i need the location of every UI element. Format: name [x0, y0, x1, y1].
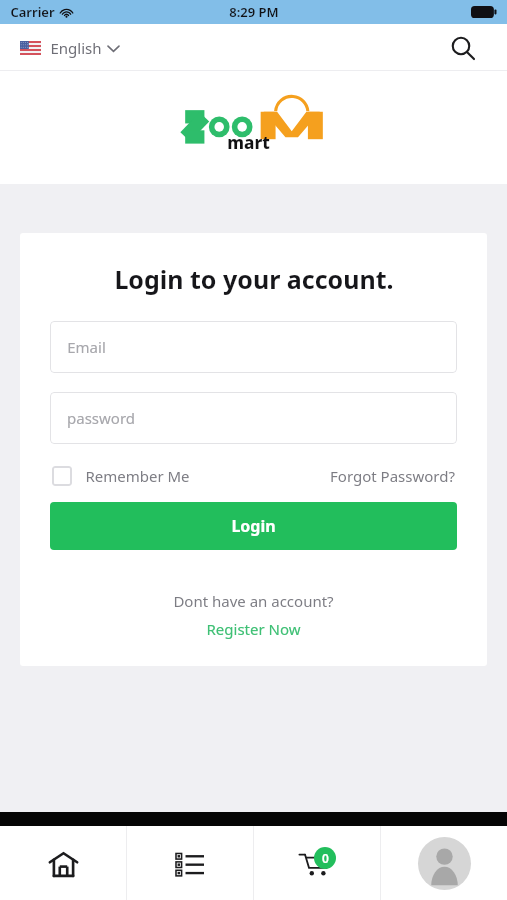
- staticText: Register Now: [206, 619, 301, 639]
- button[interactable]: English: [16, 34, 123, 62]
- staticText: password: [67, 408, 135, 428]
- staticText: mart: [227, 131, 270, 154]
- staticText: Login: [231, 515, 276, 537]
- button[interactable]: Login: [50, 502, 457, 550]
- staticText: Login to your account.: [114, 262, 394, 296]
- button[interactable]: Profile: [381, 826, 507, 900]
- staticText: Remember Me: [85, 466, 190, 486]
- staticText: Carrier: [10, 3, 55, 21]
- staticText: 8:29 PM: [229, 3, 279, 21]
- staticText: Forgot Password?: [330, 466, 455, 486]
- staticText: Email: [67, 337, 106, 357]
- button[interactable]: Search: [445, 30, 481, 66]
- button[interactable]: Cart, 0 items: [254, 826, 380, 900]
- button[interactable]: password: [50, 392, 457, 444]
- staticText: 0: [322, 850, 329, 866]
- staticText: English: [50, 38, 102, 58]
- button[interactable]: Register Now: [200, 617, 307, 641]
- button[interactable]: Forgot Password?: [328, 462, 457, 490]
- button[interactable]: Categories: [127, 826, 253, 900]
- staticText: Dont have an account?: [173, 591, 334, 611]
- button[interactable]: Home: [0, 826, 126, 900]
- button[interactable]: Remember Me: [50, 462, 192, 490]
- button[interactable]: Email: [50, 321, 457, 373]
